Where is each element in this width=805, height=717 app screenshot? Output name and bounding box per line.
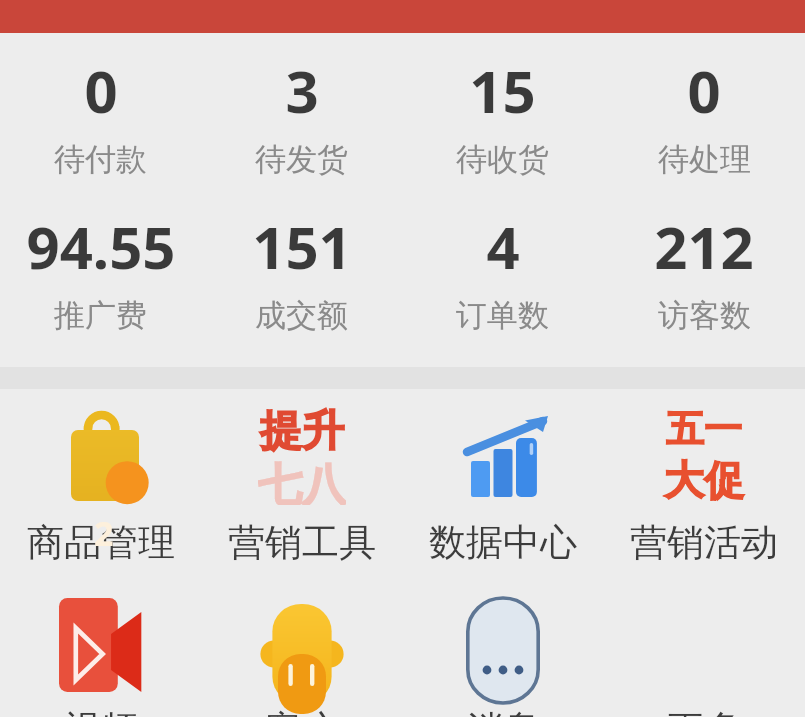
- staticText: 212: [654, 207, 754, 286]
- button[interactable]: 212: [603, 207, 805, 335]
- staticText: 七八: [258, 458, 346, 505]
- button[interactable]: 0: [0, 51, 201, 179]
- button[interactable]: 商品管理: [0, 405, 201, 566]
- staticText: 提升: [260, 405, 344, 458]
- button[interactable]: 0: [603, 51, 805, 179]
- button[interactable]: 数据中心: [402, 405, 603, 566]
- staticText: 待处理: [658, 140, 751, 179]
- staticText: 更多: [667, 706, 741, 717]
- staticText: 营销工具: [228, 519, 376, 566]
- staticText: 成交额: [255, 296, 348, 335]
- button[interactable]: 消息: [402, 592, 603, 717]
- staticText: 大促: [664, 455, 744, 505]
- staticText: 五一: [666, 405, 742, 453]
- staticText: 0: [687, 51, 721, 130]
- staticText: 待收货: [456, 140, 549, 179]
- button[interactable]: 更多: [603, 592, 805, 717]
- staticText: 15: [469, 51, 536, 130]
- button[interactable]: 151: [201, 207, 402, 335]
- staticText: 0: [84, 51, 118, 130]
- staticText: 4: [486, 207, 520, 286]
- button[interactable]: 15: [402, 51, 603, 179]
- staticText: 推广费: [54, 296, 147, 335]
- button[interactable]: 客户: [201, 592, 402, 717]
- staticText: 消息: [466, 706, 540, 717]
- button[interactable]: 3: [201, 51, 402, 179]
- button[interactable]: 营销活动: [603, 405, 805, 566]
- staticText: 商品管理: [27, 519, 175, 566]
- button[interactable]: 视频: [0, 592, 201, 717]
- staticText: 3: [285, 51, 319, 130]
- staticText: 待付款: [54, 140, 147, 179]
- staticText: 待发货: [255, 140, 348, 179]
- button[interactable]: 4: [402, 207, 603, 335]
- staticText: 视频: [64, 706, 138, 717]
- button[interactable]: 营销工具: [201, 405, 402, 566]
- staticText: 151: [252, 207, 352, 286]
- staticText: 订单数: [456, 296, 549, 335]
- staticText: 2: [94, 510, 114, 550]
- staticText: 营销活动: [630, 519, 778, 566]
- staticText: 访客数: [658, 296, 751, 335]
- button[interactable]: 94.55: [0, 207, 201, 335]
- staticText: 94.55: [26, 207, 176, 286]
- staticText: 数据中心: [429, 519, 577, 566]
- staticText: 客户: [265, 706, 339, 717]
